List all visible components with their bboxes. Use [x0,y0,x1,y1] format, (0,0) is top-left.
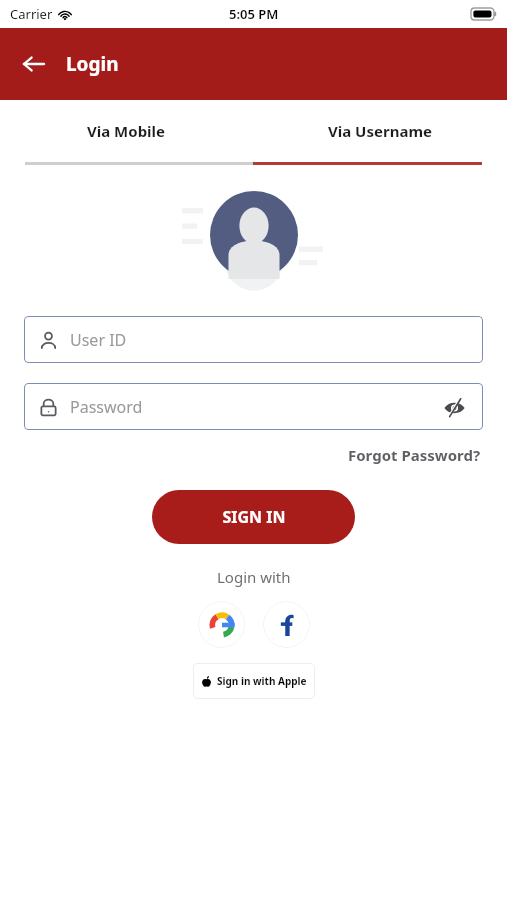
staticText: Sign in with Apple [217,674,307,688]
staticText: Login with [217,567,291,587]
button[interactable]: Sign in with Google [198,601,245,648]
staticText: 5:05 PM [229,5,279,23]
staticText: Password [70,396,143,418]
button[interactable]: Back [14,44,54,84]
button[interactable]: Password [24,383,483,430]
button[interactable]: Via Mobile [0,100,253,162]
button[interactable]: User ID [24,316,483,363]
button[interactable]: SIGN IN [152,490,355,544]
button[interactable]: Via Username [253,100,507,162]
staticText: User ID [70,329,127,351]
staticText: SIGN IN [222,506,286,528]
staticText: Via Username [328,121,432,141]
button[interactable]: Show password [435,388,473,426]
staticText: Carrier [10,5,53,23]
staticText: Forgot Password? [348,445,481,465]
button[interactable]: Forgot Password? [346,442,483,468]
button[interactable]: Sign in with Apple [193,663,315,699]
staticText: Via Mobile [87,121,166,141]
button[interactable]: Sign in with Facebook [263,601,310,648]
staticText: Login [66,51,119,77]
